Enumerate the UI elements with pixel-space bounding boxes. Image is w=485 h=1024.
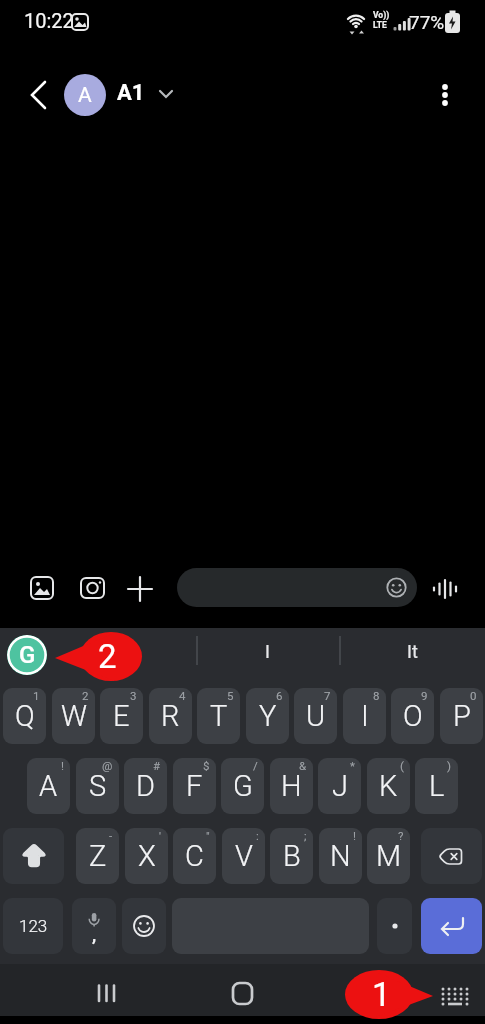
button[interactable] (421, 828, 482, 884)
button[interactable] (88, 975, 128, 1011)
staticText: A (78, 83, 92, 108)
staticText: " (206, 829, 210, 842)
staticText: 9 (421, 689, 428, 702)
staticText: Q (15, 699, 35, 733)
staticText: H (281, 769, 302, 803)
staticText: $ (203, 759, 210, 772)
button[interactable]: It (340, 623, 485, 679)
staticText: W (61, 699, 87, 733)
button[interactable]: ( (367, 758, 410, 814)
staticText: E (113, 699, 130, 733)
button[interactable] (429, 575, 465, 603)
staticText: 6 (276, 689, 283, 702)
staticText: ? (398, 829, 404, 842)
staticText: 77% (409, 11, 445, 33)
button[interactable]: 1 (3, 688, 46, 744)
staticText: 4 (179, 689, 186, 702)
staticText: ) (447, 759, 452, 772)
staticText: 0 (470, 689, 477, 702)
button[interactable]: 8 (343, 688, 386, 744)
button[interactable]: & (270, 758, 313, 814)
button[interactable]: @ (76, 758, 119, 814)
button[interactable]: $ (173, 758, 216, 814)
button[interactable] (3, 828, 64, 884)
button[interactable]: ' (125, 828, 168, 884)
staticText: A (39, 769, 58, 803)
staticText: ! (61, 759, 64, 772)
button[interactable]: ? (367, 828, 410, 884)
button[interactable]: ! (319, 828, 362, 884)
button[interactable] (177, 568, 417, 607)
button[interactable]: 2 (52, 688, 95, 744)
staticText: Y (259, 699, 277, 733)
staticText: T (210, 699, 228, 733)
staticText: M (376, 839, 402, 873)
button[interactable]: ; (270, 828, 313, 884)
staticText: B (283, 839, 301, 873)
button[interactable]: 3 (100, 688, 143, 744)
staticText: 8 (373, 689, 380, 702)
staticText: ; (304, 829, 307, 842)
staticText: R (161, 699, 180, 733)
staticText: G (19, 641, 36, 669)
button[interactable]: - (76, 828, 119, 884)
button[interactable] (27, 575, 57, 603)
staticText: 3 (130, 689, 137, 702)
button[interactable] (438, 981, 472, 1009)
staticText: 123 (19, 916, 48, 936)
button[interactable]: 6 (246, 688, 289, 744)
staticText: 7 (324, 689, 331, 702)
staticText: L (429, 769, 445, 803)
button[interactable]: 0 (440, 688, 483, 744)
staticText: X (138, 839, 156, 873)
button[interactable]: 4 (149, 688, 192, 744)
button[interactable] (20, 75, 60, 115)
button[interactable] (124, 575, 156, 603)
button[interactable] (122, 898, 166, 954)
button[interactable] (421, 898, 482, 954)
button[interactable]: / (221, 758, 264, 814)
staticText: U (306, 699, 326, 733)
staticText: @ (102, 759, 113, 772)
staticText: It (407, 641, 418, 662)
staticText: J (332, 769, 348, 803)
button[interactable]: , (72, 898, 116, 954)
staticText: 1 (33, 689, 40, 702)
button[interactable] (428, 75, 462, 115)
button[interactable] (377, 898, 412, 954)
button[interactable]: # (124, 758, 167, 814)
button[interactable]: : (222, 828, 265, 884)
staticText: Z (89, 839, 107, 873)
button[interactable]: G (7, 635, 47, 675)
button[interactable]: I (194, 623, 340, 679)
staticText: C (185, 839, 204, 873)
button[interactable]: * (318, 758, 361, 814)
button[interactable]: 9 (391, 688, 434, 744)
button[interactable]: 123 (3, 898, 63, 954)
staticText: A1 (117, 80, 145, 106)
staticText: F (186, 769, 203, 803)
staticText: , (92, 923, 97, 945)
button[interactable] (224, 975, 260, 1011)
staticText: Vo)) (373, 10, 390, 20)
staticText: LTE (373, 20, 387, 30)
button[interactable]: ! (27, 758, 70, 814)
staticText: D (136, 769, 156, 803)
staticText: ' (159, 829, 162, 842)
button[interactable]: 7 (294, 688, 337, 744)
staticText: 5 (227, 689, 234, 702)
button[interactable]: 5 (197, 688, 240, 744)
staticText: / (253, 759, 258, 772)
button[interactable] (77, 575, 107, 603)
button[interactable]: " (173, 828, 216, 884)
button[interactable]: ) (415, 758, 458, 814)
staticText: S (89, 769, 107, 803)
staticText: N (330, 839, 351, 873)
button[interactable]: A (64, 74, 106, 116)
staticText: 1 (372, 975, 391, 1014)
staticText: * (350, 759, 355, 772)
staticText: O (403, 699, 423, 733)
staticText: & (299, 759, 307, 772)
staticText: P (453, 699, 471, 733)
